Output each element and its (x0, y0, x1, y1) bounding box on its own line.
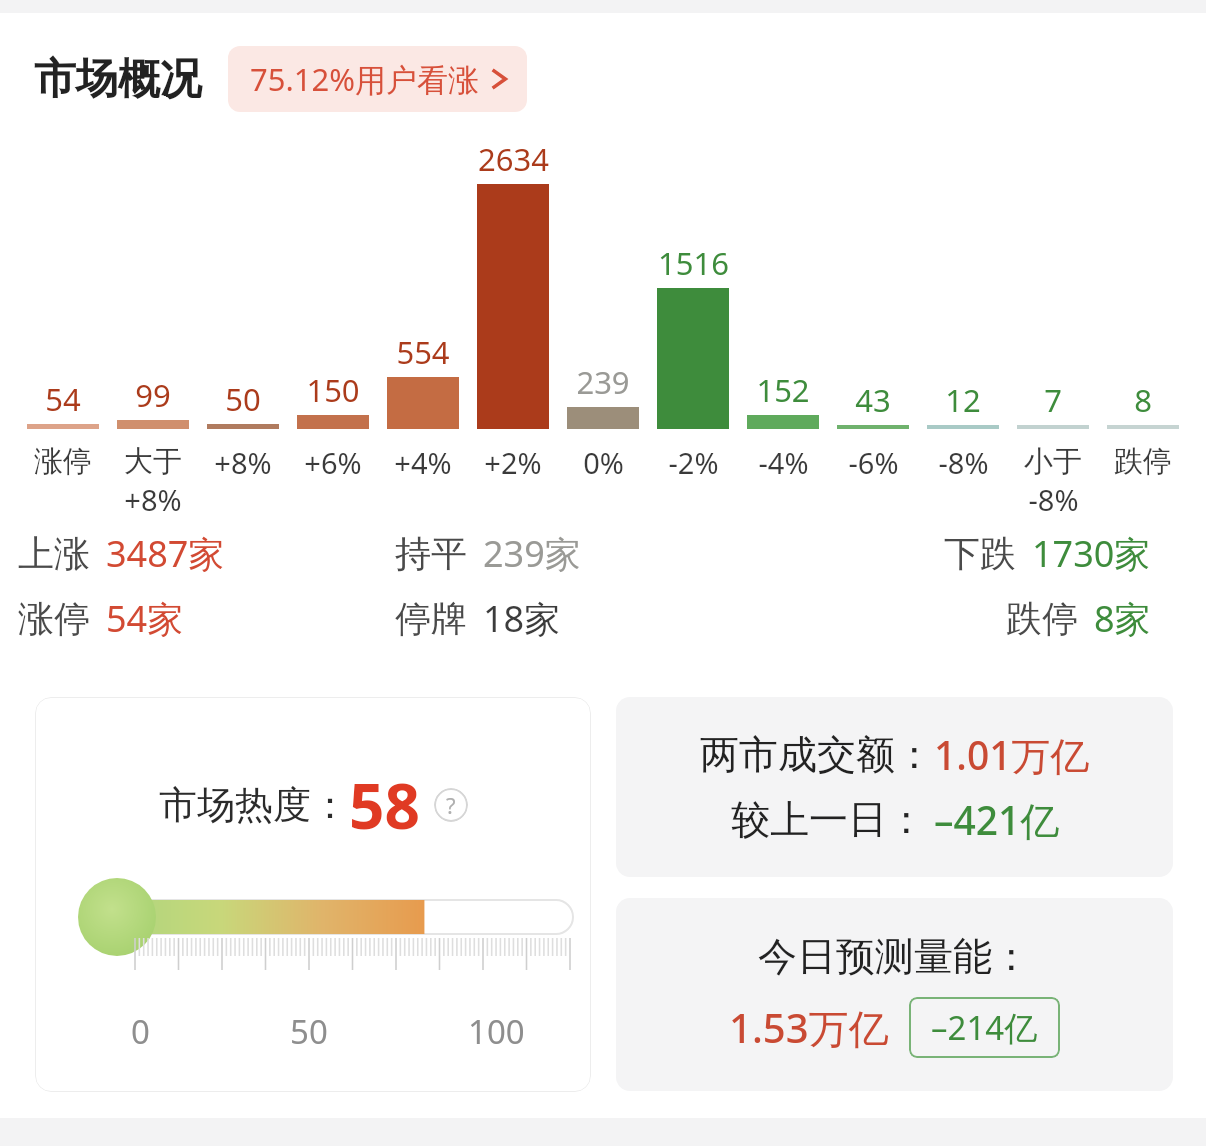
staticText: 150 (306, 369, 360, 411)
staticText: 54 (45, 378, 81, 420)
staticText: +2% (484, 443, 542, 482)
staticText: 上涨 (18, 531, 90, 576)
staticText: -8% (938, 443, 989, 482)
staticText: -6% (848, 443, 899, 482)
staticText: 1730家 (1032, 529, 1151, 578)
staticText: 58 (349, 763, 420, 847)
button[interactable]: 今日预测量能： (616, 898, 1173, 1091)
staticText: 12 (945, 379, 981, 421)
staticText: 大于 (124, 443, 182, 480)
staticText: 8家 (1094, 594, 1151, 643)
staticText: -8% (1028, 480, 1079, 513)
staticText: 2634 (478, 138, 549, 180)
staticText: 239家 (483, 529, 581, 578)
staticText: 跌停 (1006, 596, 1078, 641)
staticText: 152 (756, 369, 810, 411)
staticText: –214亿 (931, 1005, 1038, 1050)
staticText: 54家 (106, 594, 184, 643)
staticText: 100 (468, 1009, 525, 1054)
staticText: -4% (758, 443, 809, 482)
staticText: 1.01万亿 (934, 728, 1090, 781)
staticText: -2% (668, 443, 719, 482)
staticText: 18家 (483, 594, 561, 643)
staticText: 涨停 (34, 443, 92, 480)
staticText: 0 (131, 1009, 150, 1054)
staticText: –421亿 (934, 793, 1060, 846)
staticText: 今日预测量能： (758, 932, 1031, 981)
staticText: 跌停 (1114, 443, 1172, 480)
staticText: 43 (855, 379, 891, 421)
staticText: 1516 (658, 242, 729, 284)
button[interactable]: 帮助 (434, 788, 468, 822)
staticText: ? (446, 790, 456, 820)
staticText: +4% (394, 443, 452, 482)
staticText: 3487家 (106, 529, 225, 578)
staticText: 市场热度： (159, 781, 349, 829)
staticText: 239 (576, 361, 630, 403)
button[interactable]: 75.12%用户看涨 (228, 46, 527, 112)
button[interactable]: 两市成交额： (616, 697, 1173, 877)
staticText: 停牌 (395, 596, 467, 641)
staticText: 0% (583, 443, 624, 482)
staticText: 涨停 (18, 596, 90, 641)
staticText: 小于 (1024, 443, 1082, 480)
button[interactable]: 市场热度： (35, 697, 591, 1092)
staticText: 8 (1134, 379, 1152, 421)
staticText: 两市成交额： (700, 730, 934, 779)
staticText: 市场概况 (34, 53, 202, 106)
staticText: +8% (214, 443, 272, 482)
staticText: 下跌 (944, 531, 1016, 576)
staticText: 50 (225, 378, 261, 420)
staticText: 75.12%用户看涨 (250, 58, 479, 100)
staticText: 较上一日： (731, 795, 926, 844)
staticText: 50 (290, 1009, 328, 1054)
staticText: 7 (1044, 379, 1062, 421)
staticText: 持平 (395, 531, 467, 576)
staticText: +6% (304, 443, 362, 482)
staticText: +8% (124, 480, 182, 513)
staticText: 554 (396, 331, 450, 373)
staticText: 1.53万亿 (729, 1000, 889, 1055)
staticText: 99 (135, 374, 171, 416)
